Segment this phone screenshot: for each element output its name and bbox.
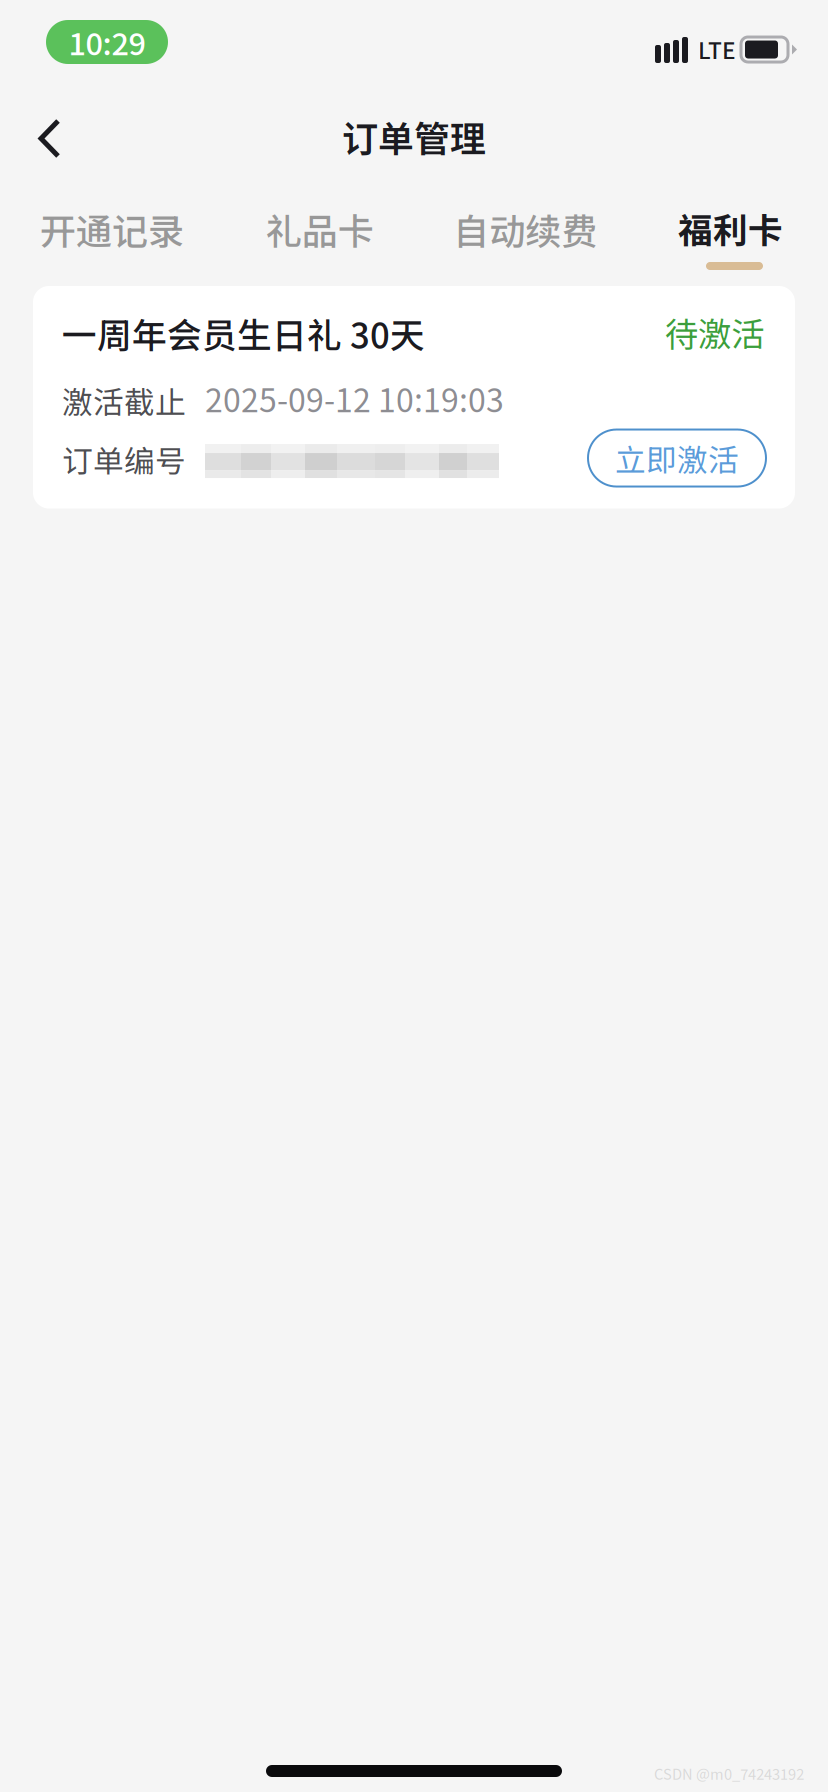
staticText: 礼品卡 xyxy=(266,203,374,255)
staticText: 待激活 xyxy=(665,308,764,356)
button[interactable]: 福利卡 xyxy=(678,188,783,288)
staticText: 10:29 xyxy=(68,20,145,64)
staticText: 订单管理 xyxy=(342,110,486,162)
staticText: LTE xyxy=(698,33,736,66)
button[interactable]: 开通记录 xyxy=(41,188,183,288)
button[interactable]: 自动续费 xyxy=(456,188,594,288)
staticText: 开通记录 xyxy=(40,203,184,255)
staticText: 福利卡 xyxy=(678,203,783,253)
staticText: 激活截止 xyxy=(62,378,186,423)
staticText: CSDN @m0_74243192 xyxy=(654,1763,804,1784)
button[interactable]: 礼品卡 xyxy=(267,188,373,288)
staticText: 2025-09-12 10:19:03 xyxy=(205,375,504,421)
button[interactable]: 返回 xyxy=(9,100,89,173)
staticText: 一周年会员生日礼 30天 xyxy=(62,308,425,358)
staticText: 订单编号 xyxy=(62,437,186,481)
staticText: 立即激活 xyxy=(615,436,739,480)
button[interactable]: 立即激活 xyxy=(588,432,766,489)
staticText: 自动续费 xyxy=(453,203,597,255)
